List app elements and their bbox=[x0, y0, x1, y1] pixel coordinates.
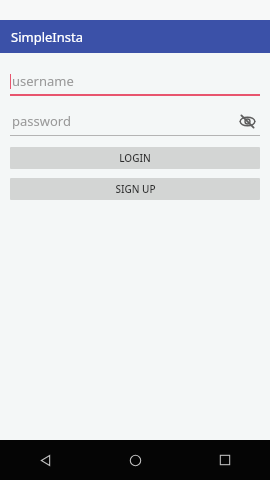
button[interactable]: Toggle password visibility bbox=[236, 110, 258, 132]
staticText: LOGIN bbox=[119, 151, 151, 165]
staticText: SIGN UP bbox=[115, 182, 156, 196]
button[interactable]: Home bbox=[90, 440, 180, 480]
button[interactable]: Recent apps bbox=[180, 440, 270, 480]
button[interactable]: username bbox=[10, 66, 260, 96]
button[interactable]: password bbox=[10, 106, 260, 136]
button[interactable]: LOGIN bbox=[10, 147, 260, 169]
button[interactable]: Back bbox=[0, 440, 90, 480]
staticText: password bbox=[12, 112, 71, 130]
staticText: username bbox=[12, 72, 74, 90]
staticText: SimpleInsta bbox=[11, 28, 83, 46]
button[interactable]: SIGN UP bbox=[10, 178, 260, 200]
